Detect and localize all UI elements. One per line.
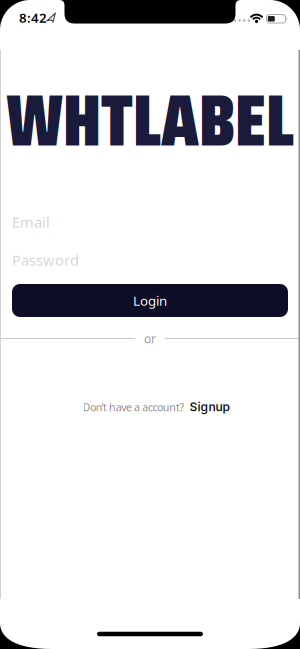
staticText: Signup <box>189 400 229 414</box>
staticText: Login <box>133 292 167 309</box>
staticText: Email <box>12 212 50 232</box>
button[interactable]: Password <box>0 245 300 275</box>
staticText: Don't have a account? <box>82 400 184 414</box>
staticText: 8:42 <box>19 9 47 26</box>
button[interactable]: Email <box>0 207 300 237</box>
button[interactable]: Signup <box>189 400 229 414</box>
staticText: Password <box>12 250 79 270</box>
staticText: or <box>144 330 156 346</box>
staticText: WHTLABEL <box>6 62 294 178</box>
button[interactable]: Login <box>12 284 288 317</box>
